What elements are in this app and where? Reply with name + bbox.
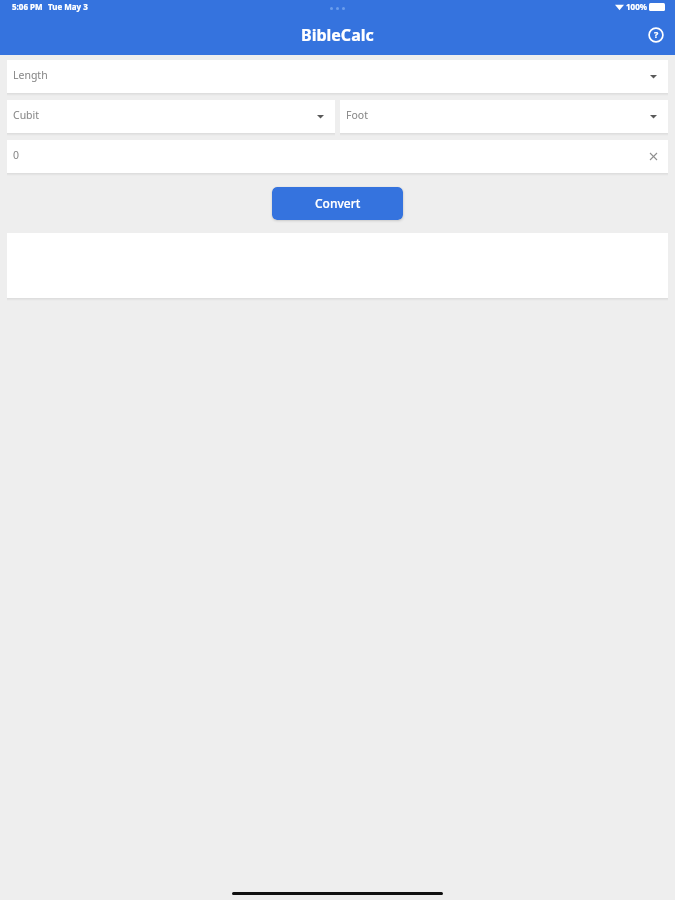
button[interactable]: Convert [272, 187, 403, 220]
staticText: Tue May 3 [48, 1, 88, 12]
staticText: 0 [13, 148, 20, 162]
button[interactable]: Cubit [7, 100, 335, 133]
staticText: 5:06 PM [12, 1, 43, 12]
button[interactable]: Length [7, 60, 668, 93]
staticText: Foot [346, 108, 368, 122]
staticText: Length [13, 68, 48, 82]
button[interactable]: Help [644, 23, 668, 47]
staticText: 100% [626, 1, 647, 12]
button[interactable]: 0 [7, 140, 668, 173]
button[interactable]: Clear [645, 148, 661, 164]
staticText: ? [654, 28, 659, 40]
staticText: BibleCalc [301, 24, 374, 46]
button[interactable]: Foot [340, 100, 668, 133]
staticText: Cubit [13, 108, 40, 122]
staticText: Convert [315, 195, 361, 211]
